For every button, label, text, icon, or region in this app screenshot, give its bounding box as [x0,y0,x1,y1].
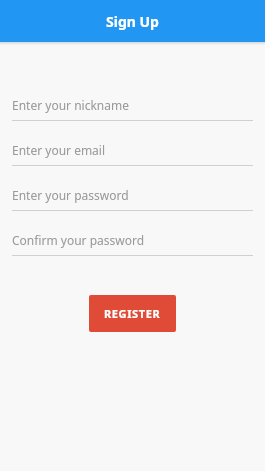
staticText: REGISTER [104,306,161,321]
button[interactable]: Enter your nickname [0,90,265,121]
staticText: Enter your password [12,187,129,203]
button[interactable]: Confirm your password [0,225,265,256]
button[interactable]: Enter your password [0,180,265,211]
staticText: Sign Up [106,12,159,31]
button[interactable]: Enter your email [0,135,265,166]
staticText: Enter your nickname [12,97,129,113]
staticText: Enter your email [12,142,106,158]
button[interactable]: REGISTER [89,295,176,332]
staticText: Confirm your password [12,232,145,248]
